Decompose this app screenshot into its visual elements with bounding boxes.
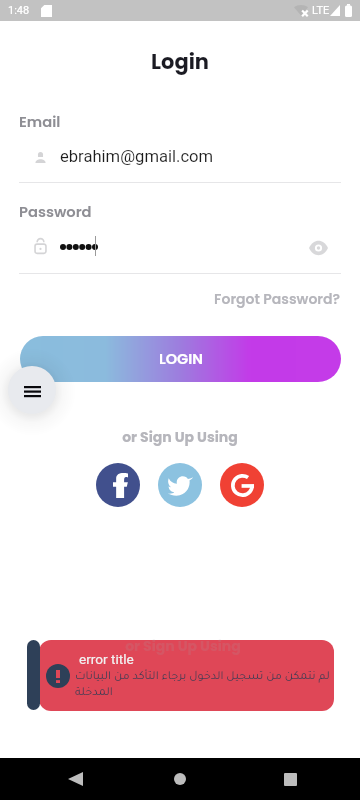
button[interactable] xyxy=(158,463,202,507)
button[interactable]: Show password xyxy=(306,236,330,260)
staticText: ebrahim@gmail.com xyxy=(60,147,214,166)
staticText: error title xyxy=(79,651,134,667)
staticText: LTE xyxy=(312,4,330,17)
staticText: Login xyxy=(0,47,360,76)
button[interactable]: Back xyxy=(68,772,83,786)
button[interactable] xyxy=(96,463,140,507)
button[interactable]: Home xyxy=(174,773,186,785)
staticText: LOGIN xyxy=(159,349,203,369)
staticText: or Sign Up Using xyxy=(123,636,243,656)
button[interactable]: Recents xyxy=(284,773,297,786)
staticText: Password xyxy=(19,202,92,223)
staticText: 1:48 xyxy=(8,4,30,17)
button[interactable]: Menu xyxy=(8,366,56,414)
staticText: or Sign Up Using xyxy=(0,427,360,447)
staticText: Email xyxy=(19,112,61,133)
button[interactable] xyxy=(220,463,264,507)
staticText: لم نتمكن من تسجيل الدخول برجاء التأكد من… xyxy=(75,671,347,699)
button[interactable]: Forgot Password? xyxy=(0,289,340,309)
button[interactable]: LOGIN xyxy=(20,336,341,382)
button[interactable]: or Sign Up Using xyxy=(27,640,334,711)
